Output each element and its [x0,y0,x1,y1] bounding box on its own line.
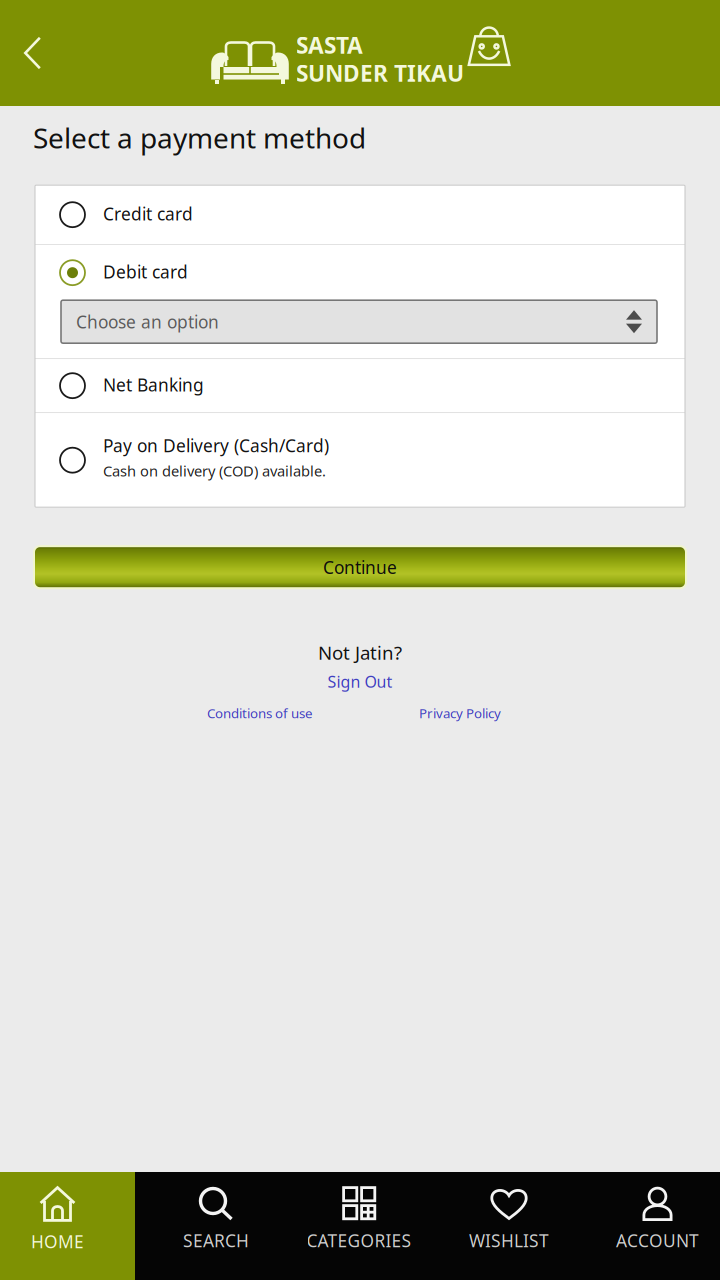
button[interactable]: Choose an option [61,300,657,343]
staticText: SUNDER TIKAU [296,58,464,88]
button[interactable]: ACCOUNT [573,1172,720,1280]
staticText: HOME [31,1230,84,1253]
staticText: Credit card [103,202,193,225]
button[interactable]: Debit card [35,245,685,300]
staticText: ACCOUNT [616,1229,699,1252]
staticText: WISHLIST [469,1229,549,1252]
button[interactable]: Sign Out [327,671,392,692]
button[interactable]: WISHLIST [427,1172,573,1280]
staticText: Not Jatin? [318,640,402,665]
staticText: SEARCH [183,1229,249,1252]
staticText: Net Banking [103,373,204,396]
staticText: Privacy Policy [419,704,501,722]
staticText: Conditions of use [207,704,313,722]
button[interactable]: HOME [0,1172,135,1280]
staticText: Continue [323,556,397,579]
button[interactable]: Privacy Policy [360,704,560,722]
staticText: Choose an option [76,310,219,333]
staticText: SASTA [296,30,363,60]
button[interactable]: Credit card [35,185,685,244]
staticText: CATEGORIES [306,1229,411,1252]
button[interactable]: SEARCH [135,1172,281,1280]
button[interactable]: Net Banking [35,359,685,412]
button[interactable]: Conditions of use [160,704,360,722]
staticText: Debit card [103,260,188,283]
button[interactable]: Pay on Delivery (Cash/Card) [35,413,685,507]
button[interactable]: Continue [34,546,686,588]
staticText: Pay on Delivery (Cash/Card) [103,434,329,457]
button[interactable]: Back [0,18,70,87]
staticText: Sign Out [327,671,392,692]
staticText: Select a payment method [33,119,366,156]
button[interactable]: CATEGORIES [281,1172,427,1280]
staticText: Cash on delivery (COD) available. [103,461,326,480]
